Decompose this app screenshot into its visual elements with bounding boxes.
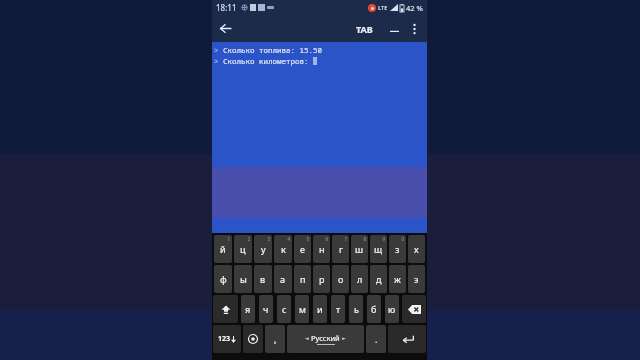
staticText: 0: [401, 236, 404, 242]
button[interactable]: а: [274, 265, 292, 293]
button[interactable]: л: [351, 265, 368, 293]
button[interactable]: д: [370, 265, 387, 293]
staticText: д: [376, 273, 382, 285]
button[interactable]: .: [366, 325, 386, 353]
button[interactable]: 7: [332, 235, 349, 263]
staticText: 5: [306, 236, 309, 242]
button[interactable]: 3: [254, 235, 272, 263]
staticText: в: [260, 273, 266, 285]
staticText: ◄: [305, 335, 309, 341]
staticText: Русский: [311, 333, 340, 343]
button[interactable]: Back: [212, 15, 239, 42]
staticText: к: [281, 243, 286, 255]
button[interactable]: Space: [287, 325, 364, 353]
staticText: 6: [325, 236, 328, 242]
staticText: TAB: [356, 23, 373, 35]
staticText: 2: [247, 236, 250, 242]
button[interactable]: с: [277, 295, 291, 323]
button[interactable]: 5: [294, 235, 311, 263]
staticText: ,: [274, 333, 277, 345]
staticText: Сколько топлива: 15.50: [223, 45, 322, 55]
staticText: т: [336, 303, 341, 315]
staticText: е: [300, 243, 305, 255]
button[interactable]: 1: [214, 235, 232, 263]
button[interactable]: ю: [385, 295, 399, 323]
button[interactable]: и: [313, 295, 327, 323]
button[interactable]: More options: [405, 15, 423, 42]
staticText: 42 %: [406, 3, 423, 13]
staticText: р: [319, 273, 325, 285]
button[interactable]: х: [408, 235, 425, 263]
staticText: о: [338, 273, 344, 285]
staticText: л: [357, 273, 363, 285]
button[interactable]: ф: [214, 265, 232, 293]
staticText: щ: [374, 243, 383, 255]
staticText: 7: [344, 236, 347, 242]
staticText: 1: [227, 236, 230, 242]
staticText: 8: [363, 236, 366, 242]
staticText: 4: [287, 236, 290, 242]
button[interactable]: Numbers: [213, 325, 241, 353]
button[interactable]: п: [294, 265, 311, 293]
staticText: >: [214, 45, 223, 55]
staticText: ь: [354, 303, 359, 315]
staticText: п: [300, 273, 306, 285]
button[interactable]: Enter: [388, 325, 426, 353]
staticText: 18:11: [216, 2, 237, 13]
staticText: н: [319, 243, 325, 255]
button[interactable]: ж: [389, 265, 406, 293]
button[interactable]: ,: [265, 325, 285, 353]
staticText: э: [414, 273, 419, 285]
button[interactable]: м: [295, 295, 309, 323]
button[interactable]: ч: [259, 295, 273, 323]
staticText: я: [245, 303, 251, 315]
button[interactable]: 4: [274, 235, 292, 263]
button[interactable]: 2: [234, 235, 252, 263]
staticText: ы: [240, 273, 247, 285]
button[interactable]: TAB: [351, 23, 378, 35]
staticText: з: [395, 243, 400, 255]
staticText: б: [371, 303, 377, 315]
button[interactable]: 9: [370, 235, 387, 263]
staticText: г: [339, 243, 343, 255]
button[interactable]: б: [367, 295, 381, 323]
button[interactable]: р: [313, 265, 330, 293]
staticText: х: [414, 243, 419, 255]
staticText: ю: [388, 303, 396, 315]
button[interactable]: ы: [234, 265, 252, 293]
button[interactable]: Shift: [213, 295, 238, 323]
staticText: ф: [220, 273, 227, 285]
button[interactable]: Settings: [243, 325, 263, 353]
staticText: 123: [218, 334, 231, 344]
button[interactable]: о: [332, 265, 349, 293]
button[interactable]: 0: [389, 235, 406, 263]
button[interactable]: ь: [349, 295, 363, 323]
button[interactable]: Minimize: [385, 15, 403, 42]
button[interactable]: 8: [351, 235, 368, 263]
staticText: с: [282, 303, 287, 315]
staticText: ж: [394, 273, 401, 285]
staticText: ш: [355, 243, 364, 255]
button[interactable]: э: [408, 265, 425, 293]
staticText: >: [214, 56, 223, 66]
staticText: и: [317, 303, 323, 315]
button[interactable]: 6: [313, 235, 330, 263]
button[interactable]: я: [241, 295, 255, 323]
staticText: у: [261, 243, 266, 255]
staticText: 3: [267, 236, 270, 242]
staticText: Сколько километров:: [223, 56, 313, 66]
button[interactable]: в: [254, 265, 272, 293]
staticText: а: [280, 273, 286, 285]
staticText: LTE: [378, 4, 388, 11]
staticText: ч: [263, 303, 269, 315]
staticText: й: [220, 243, 226, 255]
staticText: ц: [240, 243, 246, 255]
button[interactable]: Backspace: [402, 295, 426, 323]
staticText: .: [375, 333, 378, 345]
staticText: ►: [342, 335, 346, 341]
staticText: 9: [382, 236, 385, 242]
staticText: м: [299, 303, 306, 315]
button[interactable]: т: [331, 295, 345, 323]
